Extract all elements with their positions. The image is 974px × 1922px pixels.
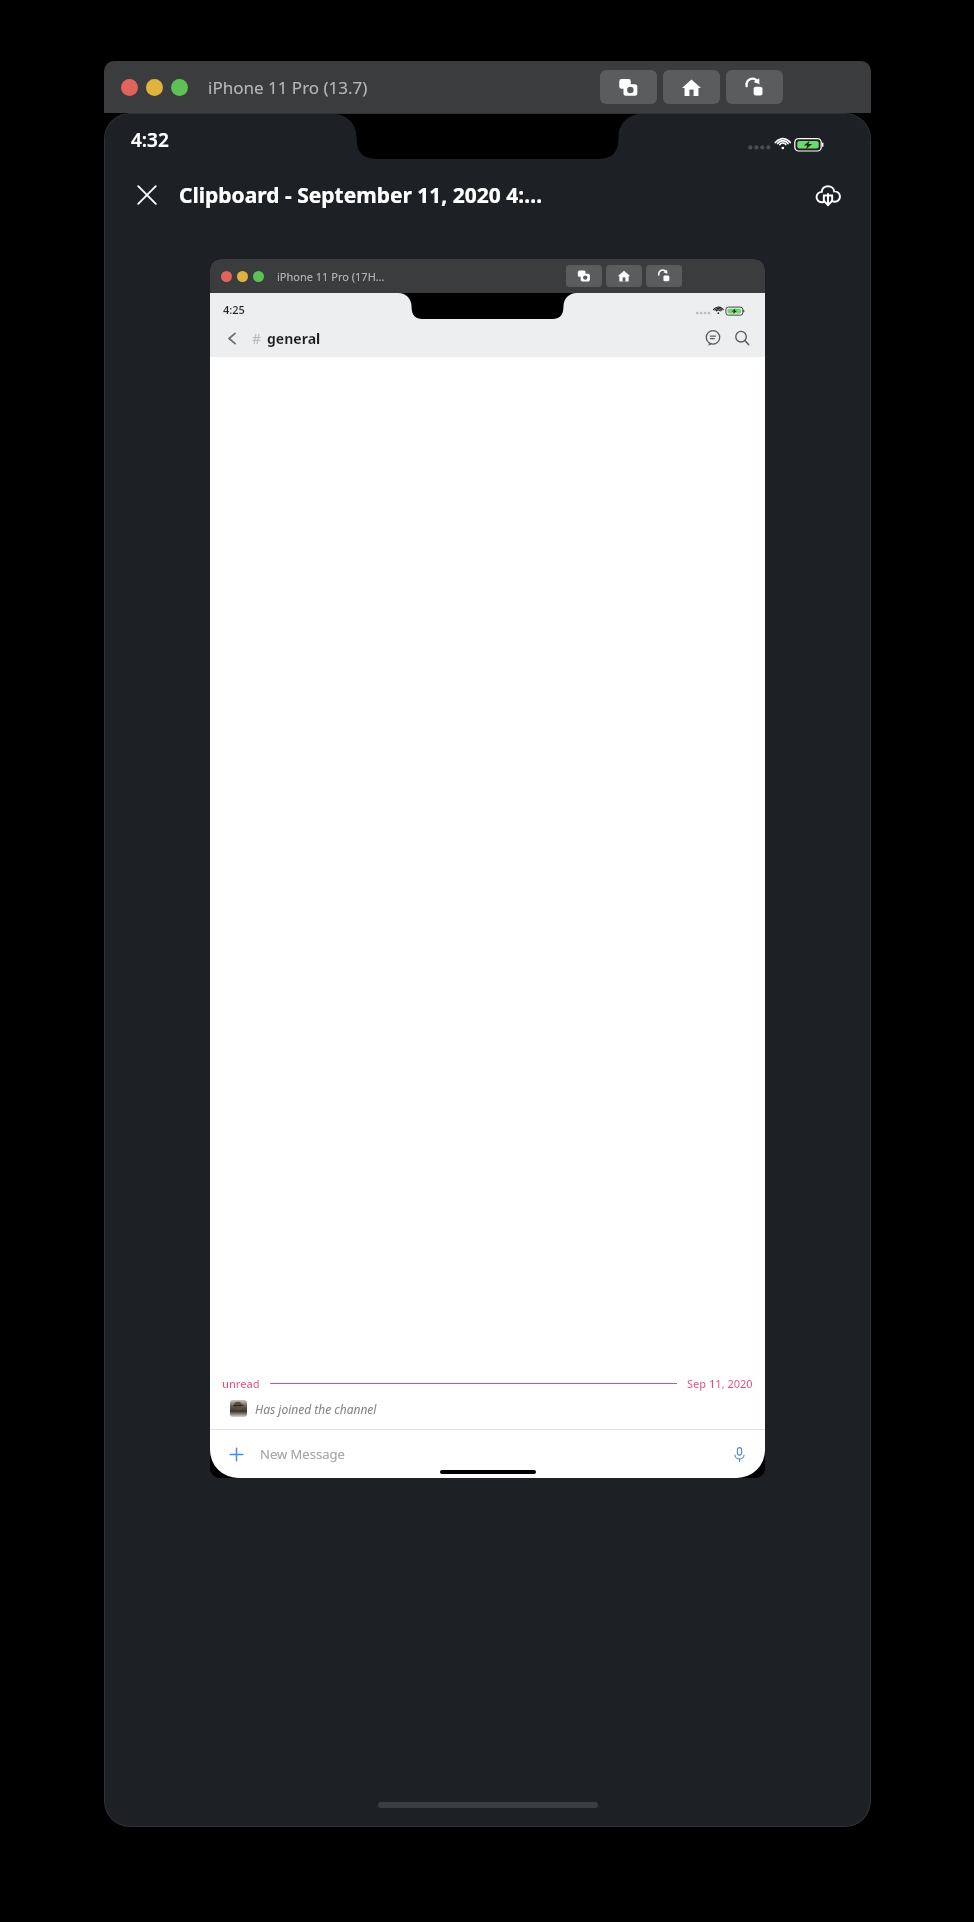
staticText: Sep 11, 2020: [687, 1376, 753, 1391]
staticText: Has joined the channel: [255, 1401, 377, 1417]
button[interactable]: Rotate: [726, 70, 783, 104]
button[interactable]: Search: [730, 326, 754, 350]
button[interactable]: Close: [127, 175, 167, 215]
button[interactable]: Window control: [171, 79, 188, 96]
staticText: iPhone 11 Pro (13.7): [208, 76, 368, 99]
staticText: Clipboard - September 11, 2020 4:…: [179, 181, 798, 210]
staticText: 4:32: [131, 127, 169, 153]
staticText: 4:25: [223, 302, 245, 317]
button[interactable]: Window control: [146, 79, 163, 96]
button[interactable]: Home: [663, 70, 720, 104]
staticText: unread: [222, 1376, 260, 1391]
button[interactable]: Screenshot: [600, 70, 657, 104]
button[interactable]: Add attachment: [224, 1442, 248, 1466]
button[interactable]: Window control: [210, 259, 765, 1478]
button[interactable]: Home: [606, 265, 642, 287]
button[interactable]: Window control: [237, 271, 248, 282]
staticText: #: [252, 329, 262, 348]
button[interactable]: Window control: [221, 271, 232, 282]
button[interactable]: Rotate: [646, 265, 682, 287]
staticText: New Message: [260, 1445, 345, 1463]
button[interactable]: Threads: [701, 326, 725, 350]
staticText: iPhone 11 Pro (17H…: [277, 269, 385, 284]
staticText: general: [267, 329, 321, 348]
button[interactable]: Download: [808, 175, 848, 215]
button[interactable]: Back: [221, 327, 243, 349]
button[interactable]: Window control: [253, 271, 264, 282]
button[interactable]: Window control: [121, 79, 138, 96]
button[interactable]: Record audio: [727, 1442, 751, 1466]
button[interactable]: Screenshot: [566, 265, 602, 287]
